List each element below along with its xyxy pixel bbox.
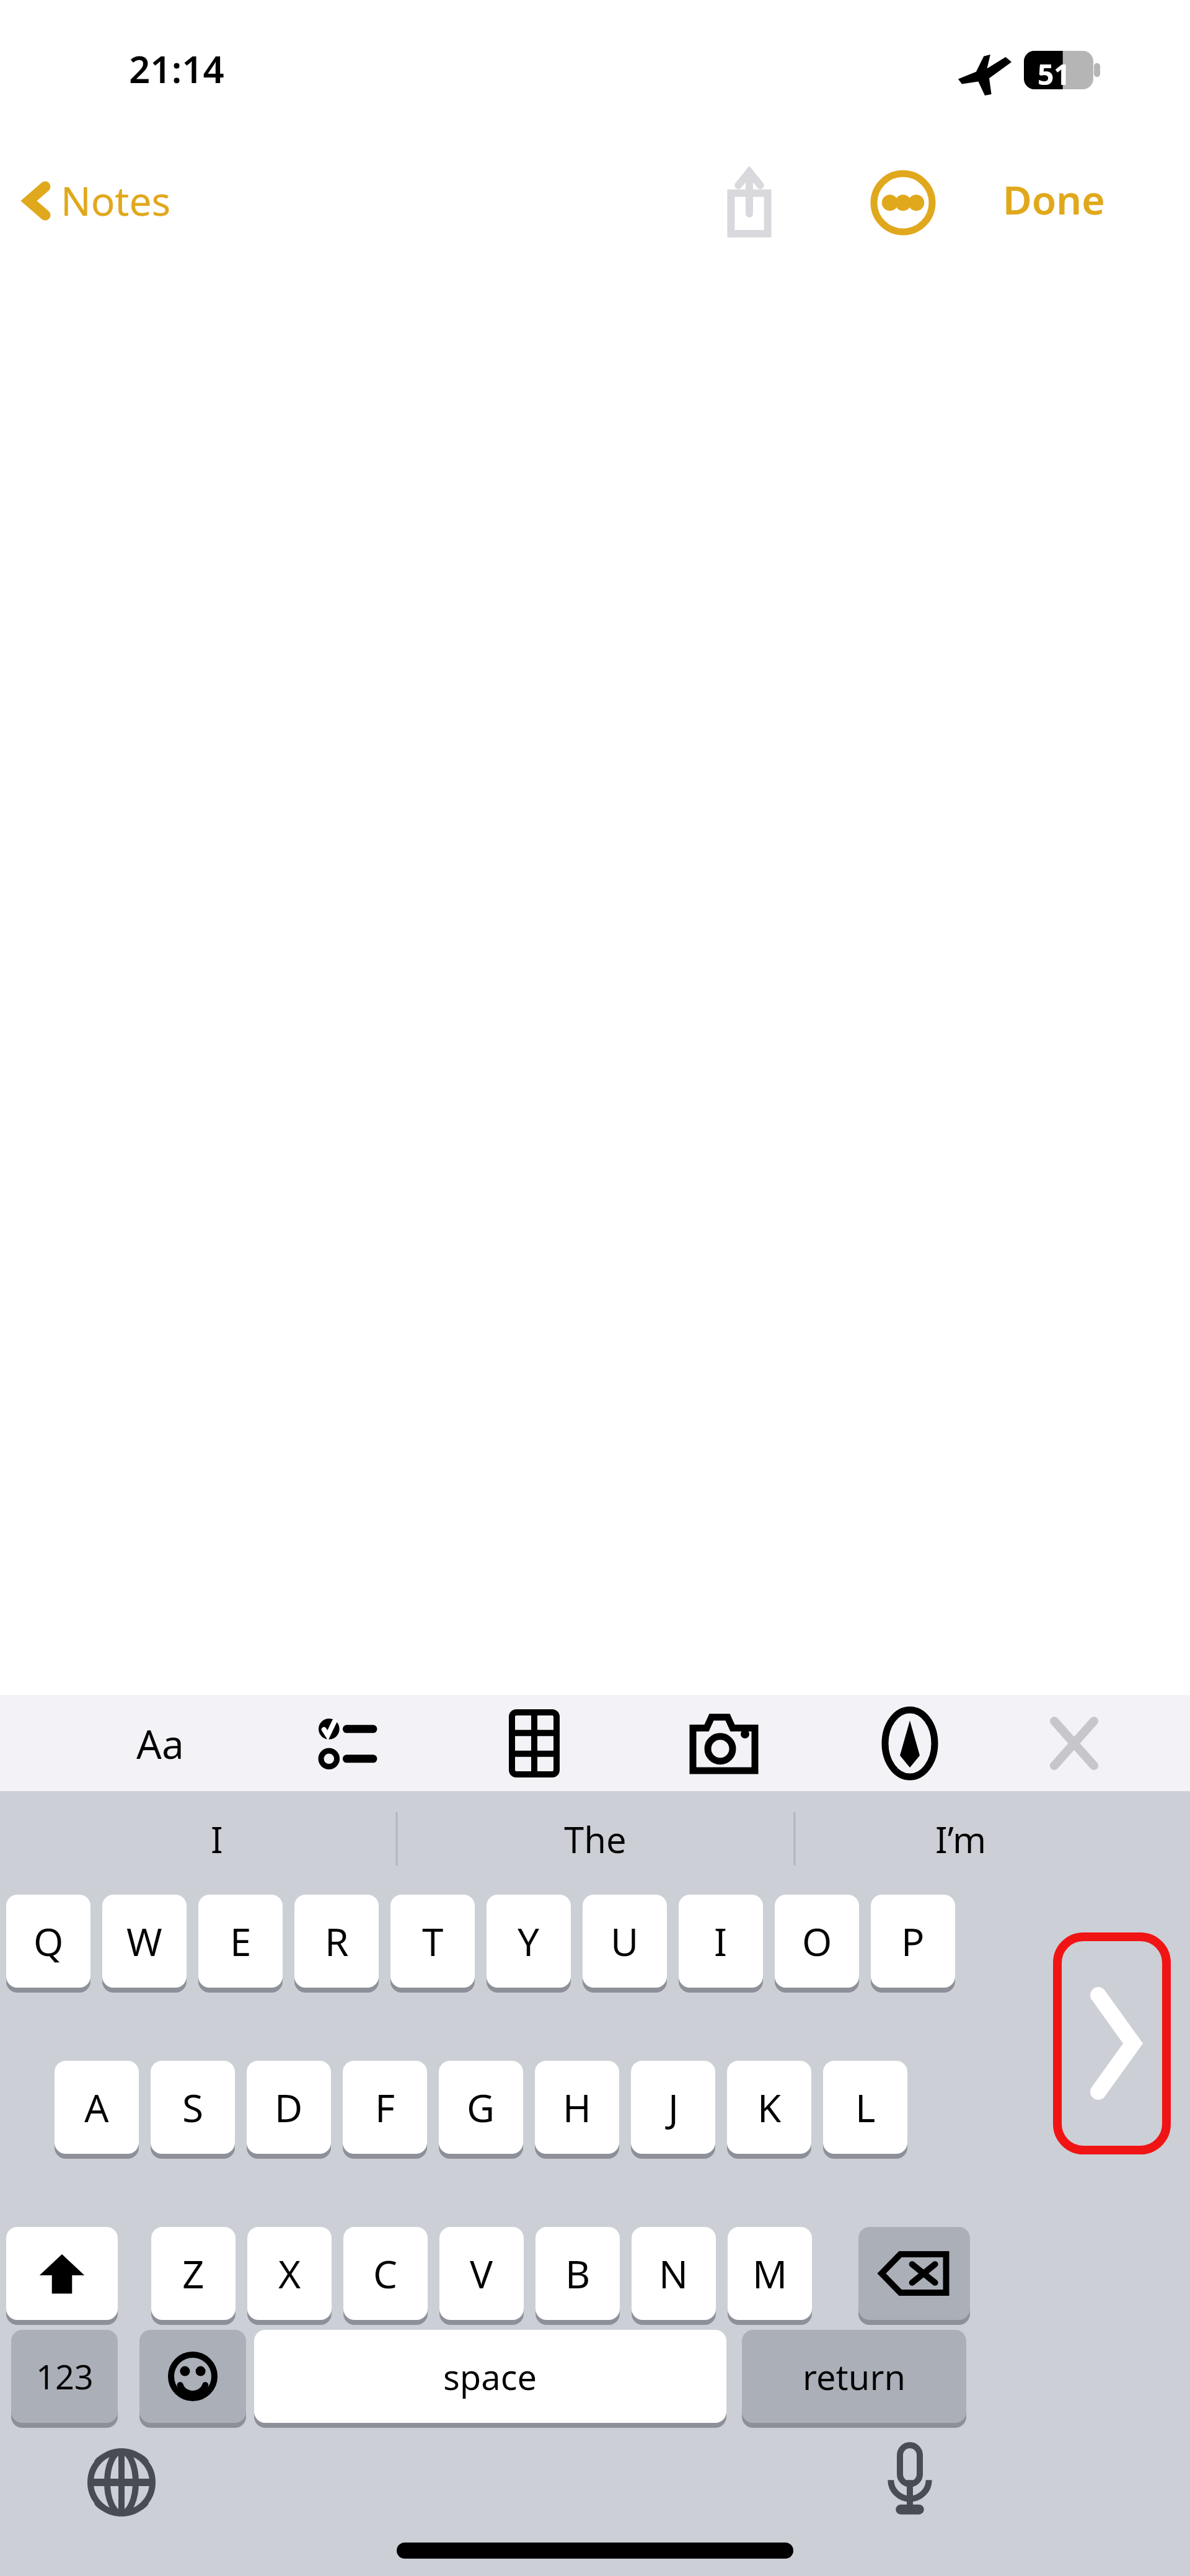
staticText: M: [752, 2247, 788, 2299]
button[interactable]: Close keyboard: [1025, 1705, 1124, 1782]
button[interactable]: O: [775, 1895, 859, 1988]
button[interactable]: D: [247, 2061, 331, 2154]
button[interactable]: Dictation: [869, 2438, 951, 2520]
staticText: S: [182, 2081, 204, 2133]
staticText: G: [467, 2081, 495, 2133]
staticText: Z: [182, 2247, 205, 2299]
button[interactable]: H: [535, 2061, 619, 2154]
button[interactable]: F: [343, 2061, 427, 2154]
button[interactable]: V: [439, 2227, 524, 2320]
button[interactable]: The: [409, 1797, 781, 1881]
button[interactable]: L: [823, 2061, 907, 2154]
staticText: U: [610, 1915, 639, 1967]
button[interactable]: J: [631, 2061, 715, 2154]
button[interactable]: B: [535, 2227, 620, 2320]
button[interactable]: Change keyboard: [81, 2441, 162, 2523]
button[interactable]: U: [583, 1895, 667, 1988]
staticText: O: [802, 1915, 832, 1967]
staticText: 123: [36, 2353, 94, 2399]
staticText: Notes: [61, 174, 171, 228]
staticText: C: [373, 2247, 398, 2299]
button[interactable]: Emoji: [139, 2330, 246, 2423]
button[interactable]: R: [294, 1895, 379, 1988]
staticText: W: [126, 1915, 162, 1967]
button[interactable]: P: [871, 1895, 955, 1988]
staticText: 21:14: [129, 43, 224, 94]
button[interactable]: Shift: [6, 2227, 118, 2320]
staticText: Q: [33, 1915, 64, 1967]
staticText: B: [565, 2247, 591, 2299]
staticText: K: [757, 2081, 782, 2133]
staticText: J: [668, 2081, 679, 2133]
staticText: X: [278, 2247, 301, 2299]
button[interactable]: C: [343, 2227, 428, 2320]
button[interactable]: X: [247, 2227, 332, 2320]
button[interactable]: Notes: [16, 166, 181, 235]
button[interactable]: Table: [485, 1705, 584, 1782]
staticText: Done: [1003, 172, 1105, 226]
staticText: L: [855, 2081, 876, 2133]
button[interactable]: A: [55, 2061, 139, 2154]
button[interactable]: Checklist: [296, 1705, 395, 1782]
button[interactable]: W: [102, 1895, 187, 1988]
staticText: Aa: [136, 1717, 184, 1771]
button[interactable]: More options: [866, 166, 940, 239]
staticText: The: [564, 1815, 627, 1864]
button[interactable]: N: [632, 2227, 716, 2320]
staticText: space: [443, 2353, 537, 2400]
button[interactable]: Delete: [858, 2227, 970, 2320]
button[interactable]: Q: [6, 1895, 90, 1988]
button[interactable]: Y: [487, 1895, 571, 1988]
button[interactable]: E: [198, 1895, 283, 1988]
button[interactable]: I: [679, 1895, 763, 1988]
staticText: return: [803, 2353, 906, 2400]
button[interactable]: Z: [151, 2227, 236, 2320]
button[interactable]: S: [151, 2061, 235, 2154]
staticText: R: [325, 1915, 349, 1967]
button[interactable]: Done: [994, 164, 1114, 235]
button[interactable]: Text format: [110, 1705, 209, 1782]
button[interactable]: 123: [11, 2330, 118, 2423]
button[interactable]: I’m: [818, 1797, 1103, 1881]
staticText: D: [275, 2081, 303, 2133]
staticText: T: [422, 1915, 444, 1967]
button[interactable]: M: [728, 2227, 812, 2320]
staticText: 51: [1038, 55, 1070, 94]
staticText: H: [563, 2081, 591, 2133]
button[interactable]: space: [254, 2330, 726, 2423]
staticText: I: [714, 1915, 728, 1967]
staticText: F: [375, 2081, 395, 2133]
staticText: P: [901, 1915, 925, 1967]
button[interactable]: Markup: [860, 1705, 959, 1782]
button[interactable]: Camera: [674, 1705, 773, 1782]
staticText: V: [470, 2247, 493, 2299]
staticText: I: [211, 1815, 223, 1864]
button[interactable]: K: [727, 2061, 811, 2154]
staticText: I’m: [935, 1815, 987, 1864]
staticText: E: [230, 1915, 252, 1967]
button[interactable]: G: [439, 2061, 523, 2154]
button[interactable]: Share: [713, 162, 786, 242]
staticText: Y: [518, 1915, 540, 1967]
staticText: A: [84, 2081, 109, 2133]
button[interactable]: return: [742, 2330, 966, 2423]
button[interactable]: I: [81, 1797, 353, 1881]
staticText: N: [659, 2247, 689, 2299]
button[interactable]: T: [390, 1895, 475, 1988]
